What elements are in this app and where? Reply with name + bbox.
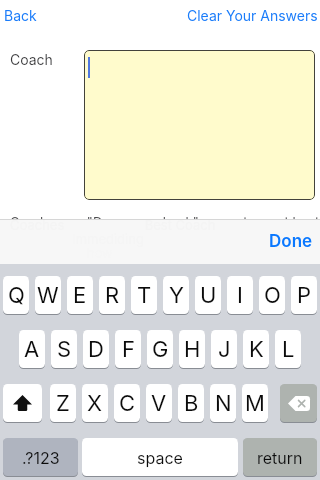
staticText: O (264, 282, 281, 309)
staticText: R (105, 282, 120, 309)
staticText: Back (4, 7, 37, 24)
button[interactable]: L (275, 330, 301, 368)
staticText: C (119, 390, 136, 417)
staticText: W (37, 282, 59, 309)
button[interactable]: E (67, 276, 93, 314)
staticText: space (137, 448, 183, 467)
staticText: X (87, 390, 103, 417)
button[interactable]: Clear Your Answers (183, 2, 320, 28)
staticText: N (215, 390, 232, 417)
button[interactable]: Shift (3, 384, 42, 422)
button[interactable]: H (179, 330, 205, 368)
staticText: V (151, 390, 167, 417)
staticText: H (184, 336, 201, 363)
button[interactable]: A (19, 330, 45, 368)
staticText: B (184, 390, 199, 417)
button[interactable]: .?123 (3, 438, 78, 476)
staticText: M (245, 390, 265, 417)
button[interactable] (84, 50, 315, 200)
button[interactable]: F (115, 330, 141, 368)
button[interactable]: P (291, 276, 317, 314)
button[interactable]: D (83, 330, 109, 368)
button[interactable]: Backspace (280, 384, 317, 422)
staticText: Z (56, 390, 70, 417)
staticText: return (257, 448, 303, 467)
button[interactable]: U (195, 276, 221, 314)
staticText: E (73, 282, 87, 309)
button[interactable]: C (114, 384, 140, 422)
staticText: L (282, 336, 295, 363)
button[interactable]: Q (3, 276, 29, 314)
button[interactable]: W (35, 276, 61, 314)
button[interactable]: J (211, 330, 237, 368)
button[interactable]: Done (262, 226, 320, 257)
staticText: U (200, 282, 217, 309)
staticText: D (88, 336, 104, 363)
button[interactable]: T (131, 276, 157, 314)
staticText: P (297, 282, 312, 309)
button[interactable]: Back (0, 2, 44, 28)
staticText: Clear Your Answers (187, 7, 318, 24)
staticText: Q (8, 282, 25, 309)
staticText: T (137, 282, 152, 309)
button[interactable]: return (243, 438, 317, 476)
staticText: J (218, 336, 231, 363)
button[interactable]: K (243, 330, 269, 368)
staticText: K (249, 336, 264, 363)
button[interactable]: R (99, 276, 125, 314)
staticText: Coaches Best Coach (10, 217, 216, 233)
button[interactable]: V (146, 384, 172, 422)
staticText: Good news: "Demos are back" - your team … (10, 214, 320, 230)
staticText: S (57, 336, 72, 363)
staticText: F (122, 336, 135, 363)
button[interactable]: Y (163, 276, 189, 314)
staticText: I (237, 282, 243, 309)
staticText: Y (169, 282, 184, 309)
staticText: Coach (10, 51, 53, 68)
staticText: .?123 (22, 448, 60, 467)
button[interactable]: space (82, 438, 238, 476)
button[interactable]: N (210, 384, 236, 422)
button[interactable]: Z (50, 384, 76, 422)
button[interactable]: O (259, 276, 285, 314)
button[interactable]: M (242, 384, 268, 422)
button[interactable]: I (227, 276, 253, 314)
staticText: Done (269, 231, 313, 252)
staticText: G (152, 336, 169, 363)
button[interactable]: G (147, 330, 173, 368)
staticText: A (24, 336, 40, 363)
button[interactable]: X (82, 384, 108, 422)
button[interactable]: B (178, 384, 204, 422)
button[interactable]: S (51, 330, 77, 368)
